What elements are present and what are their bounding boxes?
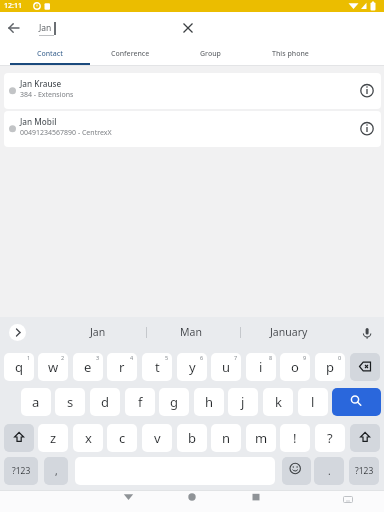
button[interactable]: d (90, 388, 120, 416)
button[interactable] (246, 488, 266, 506)
staticText: 8 (269, 354, 273, 361)
button[interactable] (4, 424, 34, 452)
staticText: ?123 (355, 465, 374, 477)
button[interactable]: ? (315, 424, 345, 452)
staticText: Man (180, 325, 202, 339)
button[interactable]: Jan Krause (4, 73, 381, 109)
button[interactable] (350, 424, 380, 452)
button[interactable]: v (142, 424, 172, 452)
button[interactable]: Contact (10, 45, 90, 63)
button[interactable] (356, 322, 376, 342)
staticText: 1 (27, 354, 31, 361)
button[interactable]: n (211, 424, 241, 452)
staticText: Jan Mobil (20, 116, 57, 127)
button[interactable]: e (73, 353, 103, 381)
staticText: v (154, 429, 161, 447)
staticText: January (270, 325, 308, 339)
button[interactable]: g (159, 388, 189, 416)
button[interactable] (338, 488, 358, 506)
button[interactable]: x (73, 424, 103, 452)
staticText: ! (293, 429, 297, 447)
staticText: 6 (200, 354, 204, 361)
button[interactable]: y (177, 353, 207, 381)
staticText: g (170, 393, 178, 411)
button[interactable]: j (228, 388, 258, 416)
staticText: y (189, 358, 196, 376)
button[interactable]: i (246, 353, 276, 381)
staticText: j (241, 393, 245, 411)
button[interactable] (356, 118, 378, 140)
button[interactable]: h (194, 388, 224, 416)
staticText: 384 - Extensions (20, 90, 74, 100)
staticText: n (222, 429, 231, 447)
button[interactable]: k (263, 388, 293, 416)
button[interactable]: Jan Mobil (4, 111, 381, 147)
button[interactable] (182, 488, 202, 506)
staticText: 0 (338, 354, 342, 361)
staticText: 9 (303, 354, 307, 361)
button[interactable]: . (314, 457, 344, 485)
staticText: 4 (130, 354, 134, 361)
button[interactable]: r (107, 353, 137, 381)
button[interactable]: l (298, 388, 328, 416)
staticText: ? (327, 429, 333, 447)
button[interactable]: o (280, 353, 310, 381)
button[interactable]: m (246, 424, 276, 452)
staticText: k (275, 393, 282, 411)
button[interactable]: t (142, 353, 172, 381)
staticText: m (255, 429, 268, 447)
staticText: b (188, 429, 196, 447)
button[interactable]: ?123 (349, 457, 379, 485)
button[interactable]: Group (170, 45, 250, 63)
button[interactable]: f (125, 388, 155, 416)
button[interactable]: a (21, 388, 51, 416)
button[interactable] (350, 353, 380, 381)
staticText: u (222, 358, 231, 376)
staticText: l (311, 393, 315, 411)
button[interactable]: z (38, 424, 68, 452)
staticText: Conference (111, 49, 150, 59)
staticText: x (85, 429, 92, 447)
staticText: e (84, 358, 92, 376)
button[interactable]: q (4, 353, 34, 381)
button[interactable]: w (38, 353, 68, 381)
staticText: p (326, 358, 334, 376)
button[interactable]: p (315, 353, 345, 381)
button[interactable]: This phone (250, 45, 330, 63)
button[interactable]: Conference (90, 45, 170, 63)
button[interactable]: Jan (63, 323, 133, 341)
staticText: 12:11 (4, 1, 22, 11)
button[interactable]: , (44, 457, 68, 485)
button[interactable]: u (211, 353, 241, 381)
staticText: 7 (234, 354, 238, 361)
button[interactable] (9, 324, 26, 341)
button[interactable] (178, 18, 198, 38)
staticText: r (119, 358, 125, 376)
button[interactable] (332, 388, 381, 416)
button[interactable]: c (107, 424, 137, 452)
staticText: 5 (165, 354, 169, 361)
staticText: w (48, 358, 59, 376)
button[interactable]: ?123 (4, 457, 38, 485)
staticText: Group (200, 49, 221, 59)
staticText: This phone (272, 49, 309, 59)
staticText: Jan (90, 325, 106, 339)
staticText: a (32, 393, 40, 411)
button[interactable] (282, 457, 311, 485)
button[interactable]: Man (156, 323, 226, 341)
staticText: ?123 (12, 465, 31, 477)
staticText: o (291, 358, 299, 376)
staticText: Contact (37, 49, 63, 59)
staticText: s (67, 393, 74, 411)
button[interactable]: January (254, 323, 324, 341)
button[interactable] (4, 18, 24, 38)
staticText: Jan (39, 22, 52, 34)
button[interactable]: b (177, 424, 207, 452)
button[interactable]: s (55, 388, 85, 416)
staticText: i (259, 358, 263, 376)
staticText: f (138, 393, 143, 411)
button[interactable]: ! (280, 424, 310, 452)
button[interactable] (118, 488, 138, 506)
button[interactable] (356, 80, 378, 102)
